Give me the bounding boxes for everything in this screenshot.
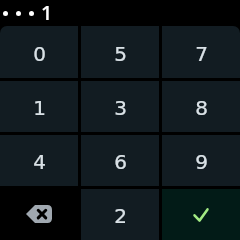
staticText: 2: [114, 204, 127, 227]
staticText: 0: [33, 42, 46, 65]
button[interactable]: 7: [162, 26, 240, 78]
staticText: 3: [114, 96, 127, 119]
button[interactable]: 5: [81, 26, 159, 78]
button[interactable]: 2: [81, 189, 159, 240]
button[interactable]: 4: [0, 135, 78, 186]
staticText: 1: [41, 0, 53, 25]
staticText: 9: [195, 150, 208, 173]
other: PIN progress: [0, 0, 240, 26]
button[interactable]: 0: [0, 26, 78, 78]
staticText: 1: [33, 96, 46, 119]
button[interactable]: Confirm: [162, 189, 240, 240]
staticText: 7: [195, 42, 208, 65]
button[interactable]: 8: [162, 81, 240, 132]
button[interactable]: 1: [0, 81, 78, 132]
staticText: 6: [114, 150, 127, 173]
button[interactable]: 3: [81, 81, 159, 132]
staticText: 4: [33, 150, 46, 173]
button[interactable]: 6: [81, 135, 159, 186]
button[interactable]: 9: [162, 135, 240, 186]
staticText: 8: [195, 96, 208, 119]
button[interactable]: Backspace: [0, 189, 78, 240]
staticText: 5: [114, 42, 127, 65]
